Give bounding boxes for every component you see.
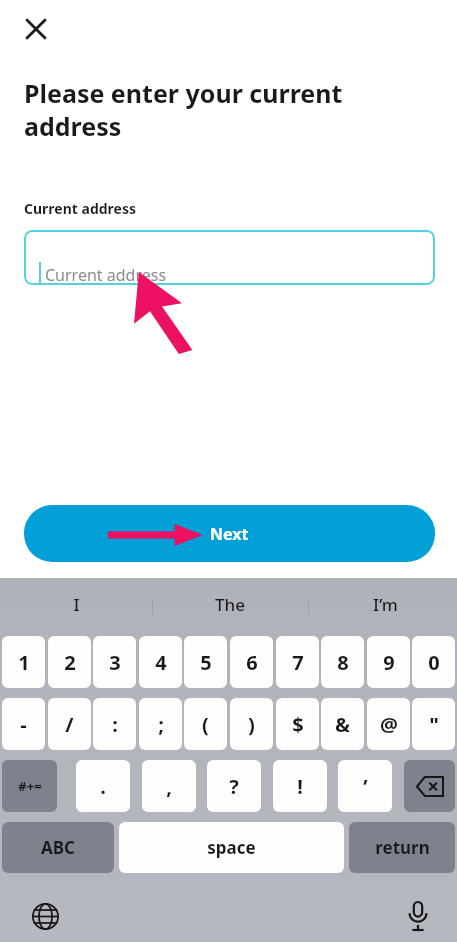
staticText: 7 [292, 649, 304, 676]
staticText: , [166, 773, 172, 800]
staticText: Next [210, 523, 249, 545]
staticText: ! [297, 773, 303, 800]
staticText: & [335, 711, 350, 738]
staticText: @ [380, 711, 398, 738]
staticText: / [65, 711, 74, 738]
staticText: 6 [246, 649, 258, 676]
button[interactable]: ) [230, 698, 273, 750]
button[interactable]: ’ [338, 760, 392, 812]
staticText: ( [202, 711, 209, 738]
button[interactable]: return [349, 822, 455, 873]
staticText: Please enter your current address [24, 76, 394, 143]
staticText: 9 [383, 649, 395, 676]
button[interactable]: Current address [24, 230, 435, 285]
button[interactable]: Change keyboard language [22, 893, 68, 939]
staticText: " [429, 711, 439, 738]
staticText: 4 [155, 649, 167, 676]
button[interactable]: . [76, 760, 130, 812]
staticText: ? [229, 773, 239, 800]
staticText: ; [158, 711, 164, 738]
button[interactable]: 9 [367, 636, 410, 688]
button[interactable]: ; [139, 698, 182, 750]
button[interactable]: " [412, 698, 455, 750]
button[interactable]: @ [367, 698, 410, 750]
button[interactable]: - [2, 698, 45, 750]
staticText: Current address [24, 199, 136, 218]
button[interactable]: 7 [276, 636, 319, 688]
button[interactable]: ABC [2, 822, 114, 873]
staticText: $ [292, 711, 304, 738]
button[interactable]: 0 [412, 636, 455, 688]
staticText: return [375, 836, 430, 859]
staticText: 2 [64, 649, 76, 676]
button[interactable]: 3 [93, 636, 136, 688]
button[interactable]: Backspace [404, 760, 455, 812]
staticText: I [73, 593, 80, 616]
staticText: I’m [373, 593, 398, 616]
button[interactable]: space [119, 822, 344, 873]
button[interactable]: Close [14, 7, 58, 51]
button[interactable]: Voice input [395, 893, 441, 939]
button[interactable]: 1 [2, 636, 45, 688]
button[interactable]: I’m [330, 578, 440, 630]
button[interactable]: 8 [321, 636, 364, 688]
button[interactable]: 4 [139, 636, 182, 688]
button[interactable]: The [175, 578, 285, 630]
staticText: 0 [428, 649, 440, 676]
staticText: 8 [337, 649, 349, 676]
staticText: ’ [363, 773, 368, 800]
button[interactable]: / [48, 698, 91, 750]
staticText: space [207, 836, 256, 859]
button[interactable]: ? [207, 760, 261, 812]
button[interactable]: : [93, 698, 136, 750]
staticText: #+= [18, 777, 42, 795]
staticText: ABC [41, 836, 75, 859]
staticText: Current address [45, 264, 167, 285]
staticText: 5 [200, 649, 212, 676]
button[interactable]: 6 [230, 636, 273, 688]
button[interactable]: ! [273, 760, 327, 812]
button[interactable]: $ [276, 698, 319, 750]
staticText: 3 [109, 649, 121, 676]
button[interactable]: , [142, 760, 196, 812]
button[interactable]: 2 [48, 636, 91, 688]
staticText: : [112, 711, 118, 738]
staticText: The [215, 593, 245, 616]
staticText: ) [248, 711, 255, 738]
button[interactable]: ( [184, 698, 227, 750]
button[interactable]: & [321, 698, 364, 750]
staticText: - [20, 711, 27, 738]
staticText: 1 [18, 649, 30, 676]
button[interactable]: Next [24, 505, 435, 562]
button[interactable]: 5 [184, 636, 227, 688]
button[interactable]: I [21, 578, 131, 630]
staticText: . [100, 773, 106, 800]
button[interactable]: #+= [2, 760, 57, 812]
